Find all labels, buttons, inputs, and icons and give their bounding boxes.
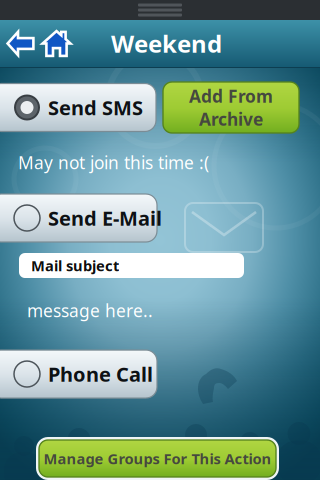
staticText: Manage Groups For This Action bbox=[43, 449, 271, 468]
button[interactable]: Manage Groups For This Action bbox=[39, 440, 276, 477]
button[interactable]: Add From bbox=[163, 82, 299, 133]
button[interactable]: Send SMS bbox=[0, 83, 156, 131]
button[interactable]: Back bbox=[6, 29, 35, 57]
staticText: Phone Call bbox=[48, 361, 153, 387]
button[interactable]: Send E-Mail bbox=[0, 194, 157, 242]
staticText: May not join this time :( bbox=[18, 151, 209, 174]
staticText: Add From bbox=[189, 84, 273, 107]
button[interactable]: Phone Call bbox=[0, 350, 157, 398]
staticText: Archive bbox=[199, 107, 263, 130]
staticText: Mail subject bbox=[31, 256, 119, 275]
staticText: message here.. bbox=[27, 299, 153, 322]
staticText: Weekend bbox=[111, 28, 222, 59]
staticText: Send SMS bbox=[48, 94, 143, 121]
staticText: Send E-Mail bbox=[48, 205, 162, 231]
button[interactable]: Home bbox=[41, 28, 72, 58]
